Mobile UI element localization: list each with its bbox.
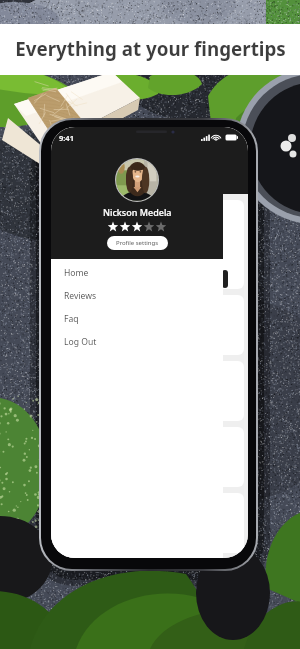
staticText: Faq bbox=[64, 313, 79, 325]
staticText: Everything at your fingertips bbox=[15, 36, 286, 62]
staticText: Reviews bbox=[64, 290, 97, 302]
button[interactable] bbox=[55, 200, 244, 289]
button[interactable] bbox=[55, 493, 244, 553]
button[interactable]: Faq bbox=[51, 307, 223, 330]
staticText: Nickson Medela bbox=[103, 206, 172, 218]
button[interactable]: Profile settings bbox=[107, 236, 168, 250]
staticText: Home bbox=[64, 267, 89, 279]
staticText: Profile settings bbox=[116, 239, 159, 247]
button[interactable]: Home bbox=[51, 261, 223, 284]
staticText: Log Out bbox=[64, 336, 97, 348]
button[interactable] bbox=[55, 295, 244, 355]
button[interactable]: Reviews bbox=[51, 284, 223, 307]
button[interactable]: Log Out bbox=[51, 330, 223, 353]
staticText: 9:41 bbox=[59, 133, 74, 143]
